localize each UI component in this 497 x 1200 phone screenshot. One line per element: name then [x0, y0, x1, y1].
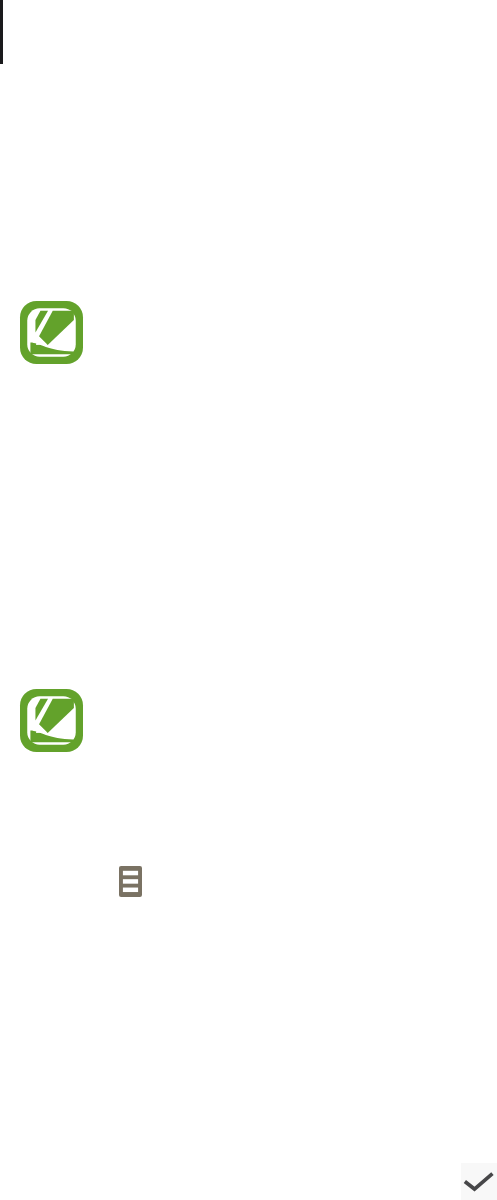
- button[interactable]: Done: [461, 1163, 497, 1200]
- button[interactable]: S Note attachment: [20, 301, 83, 364]
- button[interactable]: S Note attachment: [20, 689, 83, 752]
- button[interactable]: List template: [119, 866, 142, 897]
